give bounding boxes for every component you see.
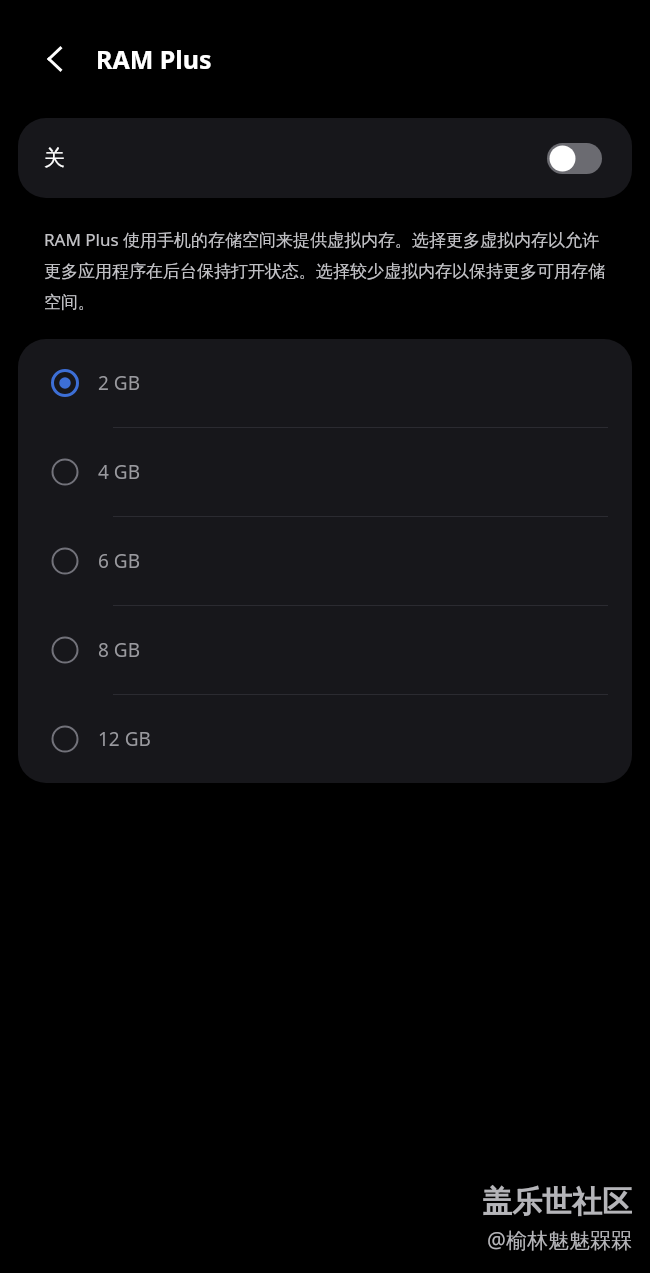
staticText: 2 GB — [98, 370, 140, 396]
staticText: 6 GB — [98, 548, 140, 574]
button[interactable]: 12 GB — [18, 695, 632, 783]
button[interactable]: 关 — [18, 118, 632, 198]
button[interactable]: 6 GB — [18, 517, 632, 605]
button[interactable]: Back — [30, 34, 80, 84]
staticText: RAM Plus 使用手机的存储空间来提供虚拟内存。选择更多虚拟内存以允许更多应… — [44, 228, 612, 313]
staticText: 关 — [44, 145, 65, 171]
staticText: 12 GB — [98, 726, 151, 752]
staticText: 盖乐世社区 — [482, 1183, 632, 1221]
button[interactable]: 8 GB — [18, 606, 632, 694]
staticText: 8 GB — [98, 637, 140, 663]
staticText: 4 GB — [98, 459, 140, 485]
button[interactable]: 4 GB — [18, 428, 632, 516]
staticText: RAM Plus — [96, 42, 212, 76]
staticText: @榆林魅魅槑槑 — [487, 1226, 632, 1255]
button[interactable]: 2 GB — [18, 339, 632, 427]
